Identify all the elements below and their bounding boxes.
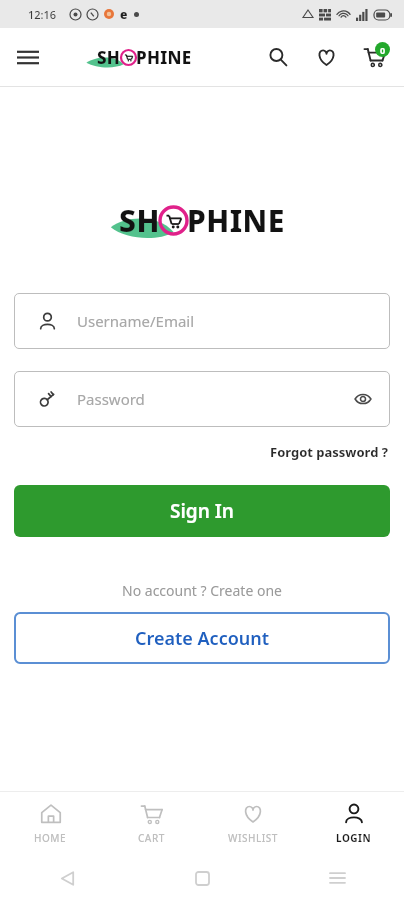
button[interactable]: CART (101, 792, 202, 856)
button[interactable]: Show password (348, 384, 378, 414)
staticText: 12:16 (28, 7, 57, 22)
button[interactable]: Search (264, 43, 292, 71)
staticText: CART (138, 831, 165, 845)
staticText: WISHLIST (228, 831, 278, 845)
button[interactable]: WISHLIST (202, 792, 303, 856)
staticText: Username/Email (77, 311, 195, 331)
button[interactable]: Menu (12, 41, 44, 73)
button[interactable]: Cart, 0 items (360, 42, 390, 72)
staticText: Sign In (170, 498, 234, 524)
button[interactable]: Wishlist (312, 43, 340, 71)
button[interactable]: Sign In (14, 485, 390, 537)
button[interactable]: Forgot password ? (254, 441, 404, 463)
staticText: e (120, 6, 128, 22)
button[interactable]: Recent apps (322, 863, 352, 893)
staticText: SH (119, 200, 160, 241)
staticText: HOME (34, 831, 67, 845)
staticText: PHINE (187, 200, 285, 241)
staticText: No account ? Create one (122, 581, 282, 600)
button[interactable]: LOGIN (303, 792, 404, 856)
staticText: 0 (380, 44, 386, 56)
button[interactable]: HOME (0, 792, 101, 856)
staticText: LOGIN (336, 831, 372, 845)
button[interactable]: Username/Email (14, 293, 390, 349)
button[interactable]: Home (187, 863, 217, 893)
button[interactable]: Create Account (14, 612, 390, 664)
staticText: Create Account (135, 626, 270, 651)
button[interactable]: Password (14, 371, 390, 427)
button[interactable]: Back (52, 863, 82, 893)
staticText: Password (77, 389, 145, 409)
staticText: SH (97, 46, 121, 69)
staticText: PHINE (136, 46, 192, 69)
